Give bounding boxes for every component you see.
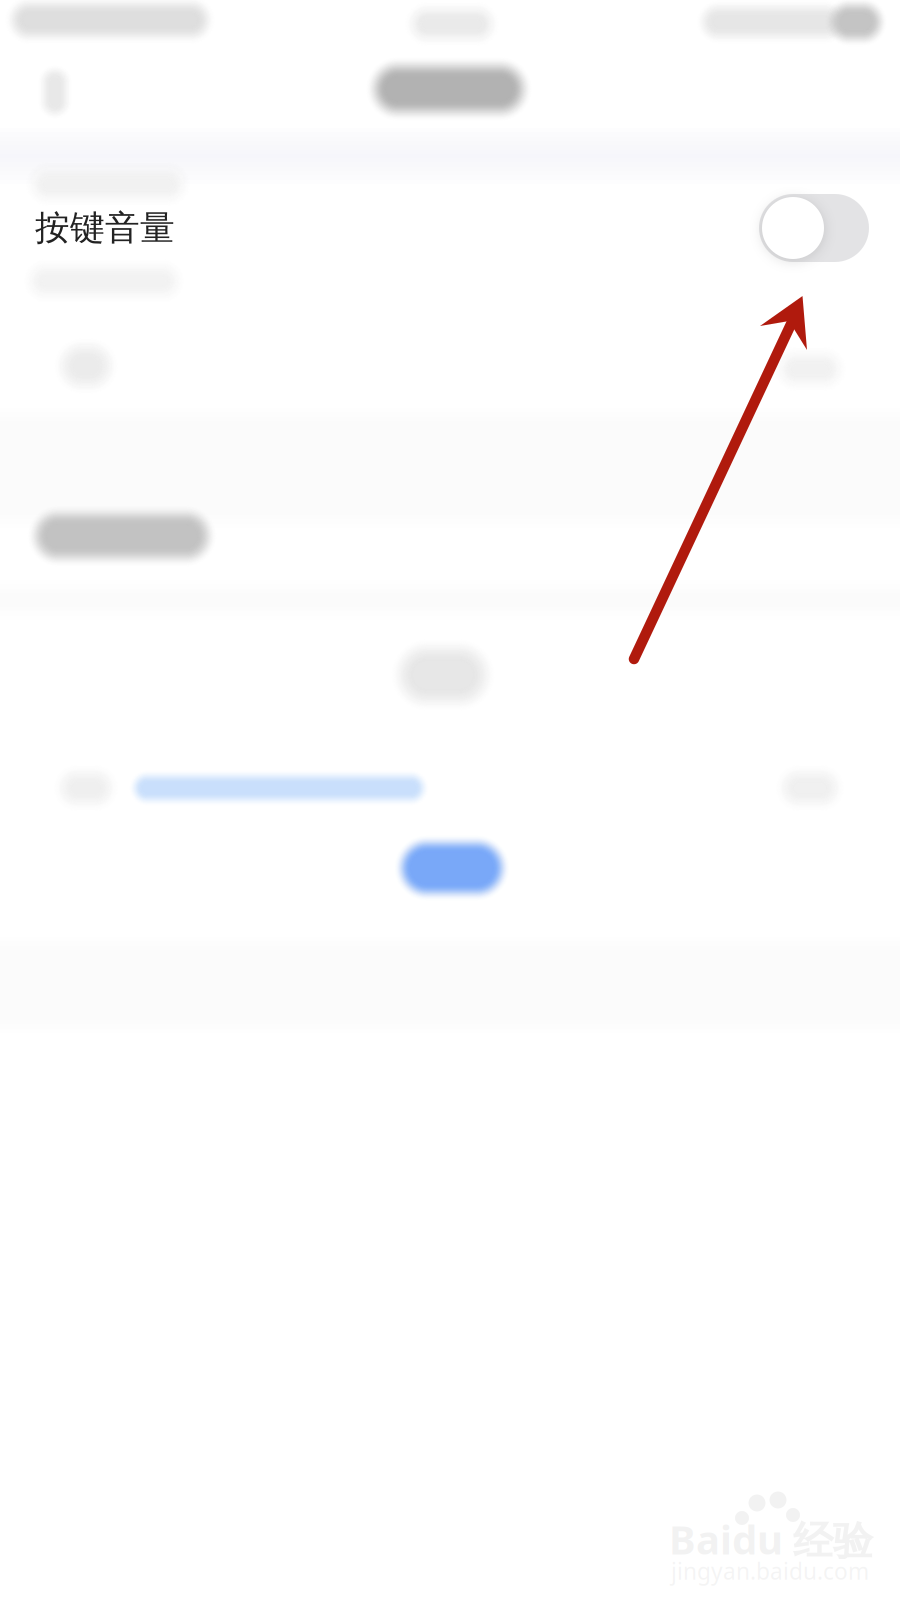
button[interactable]: 设置项 xyxy=(0,319,900,415)
button[interactable]: 按键音量 xyxy=(0,172,900,284)
button[interactable]: 确定 xyxy=(357,820,547,916)
staticText: 按键音量 xyxy=(35,207,175,249)
button[interactable]: 设置项 xyxy=(0,248,900,314)
button[interactable]: 返回 xyxy=(8,46,104,138)
staticText: Baidu 经验 xyxy=(669,1512,873,1566)
button[interactable]: 设置项 xyxy=(0,733,900,843)
button[interactable]: 设置项 xyxy=(0,620,900,730)
staticText: jingyan.baidu.com xyxy=(671,1556,869,1586)
